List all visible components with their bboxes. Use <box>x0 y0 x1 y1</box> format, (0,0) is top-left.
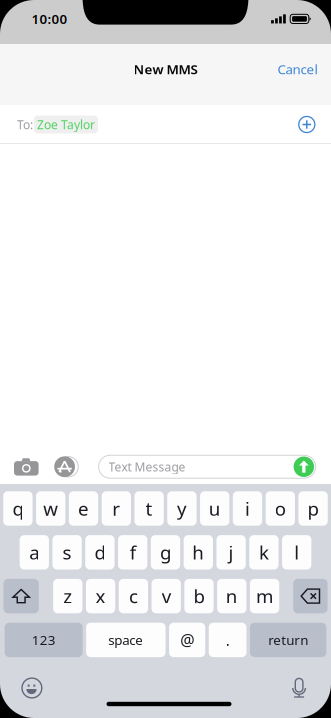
staticText: b <box>193 584 204 608</box>
button[interactable]: d <box>85 535 114 569</box>
button[interactable]: Send <box>294 456 316 477</box>
staticText: d <box>94 540 105 565</box>
staticText: 10:00 <box>31 10 67 28</box>
button[interactable]: k <box>249 535 278 569</box>
staticText: v <box>162 584 171 608</box>
button[interactable]: . <box>209 623 246 657</box>
staticText: To: <box>17 116 33 132</box>
button[interactable]: Dictate <box>293 678 331 699</box>
staticText: t <box>146 496 153 521</box>
button[interactable]: space <box>86 623 165 657</box>
button[interactable]: t <box>134 491 164 526</box>
staticText: . <box>226 629 230 650</box>
button[interactable]: h <box>184 535 213 569</box>
button[interactable]: u <box>200 491 229 526</box>
button[interactable]: return <box>250 623 326 657</box>
button[interactable]: w <box>36 491 65 526</box>
staticText: l <box>294 540 299 565</box>
button[interactable]: i <box>233 491 262 526</box>
button[interactable]: Emoji <box>0 678 42 699</box>
staticText: k <box>259 540 269 565</box>
staticText: f <box>130 540 136 565</box>
staticText: e <box>78 496 89 521</box>
staticText: Text Message <box>109 459 186 475</box>
staticText: m <box>256 584 273 608</box>
staticText: return <box>268 631 308 649</box>
staticText: r <box>112 496 120 521</box>
staticText: @ <box>180 629 194 650</box>
button[interactable]: o <box>266 491 295 526</box>
staticText: z <box>63 584 72 608</box>
button[interactable]: s <box>52 535 82 569</box>
staticText: h <box>192 540 204 565</box>
button[interactable]: g <box>151 535 180 569</box>
button[interactable]: q <box>3 491 32 526</box>
button[interactable]: z <box>53 579 82 613</box>
staticText: i <box>245 496 250 521</box>
button[interactable]: l <box>282 535 311 569</box>
button[interactable]: a <box>20 535 49 569</box>
staticText: o <box>275 496 286 521</box>
staticText: space <box>108 631 143 649</box>
button[interactable]: y <box>167 491 196 526</box>
button[interactable]: f <box>118 535 147 569</box>
button[interactable]: Cancel <box>264 53 331 85</box>
staticText: Cancel <box>277 60 317 78</box>
button[interactable]: e <box>69 491 98 526</box>
staticText: Zoe Taylor <box>37 116 95 132</box>
staticText: y <box>177 496 187 521</box>
staticText: s <box>63 540 72 565</box>
staticText: a <box>29 540 39 565</box>
staticText: c <box>129 584 138 608</box>
staticText: x <box>96 584 106 608</box>
button[interactable]: j <box>216 535 246 569</box>
button[interactable]: 123 <box>5 623 83 657</box>
button[interactable]: @ <box>169 623 205 657</box>
staticText: u <box>209 496 221 521</box>
staticText: w <box>43 496 58 521</box>
button[interactable]: n <box>217 579 246 613</box>
button[interactable]: Add contact <box>298 116 331 133</box>
staticText: q <box>12 496 23 521</box>
button[interactable]: x <box>86 579 115 613</box>
button[interactable]: Shift <box>3 579 39 613</box>
staticText: n <box>226 584 238 608</box>
button[interactable]: b <box>184 579 214 613</box>
staticText: New MMS <box>133 60 197 78</box>
staticText: g <box>160 540 171 565</box>
button[interactable]: m <box>250 579 279 613</box>
staticText: j <box>229 540 234 565</box>
button[interactable]: Delete <box>293 579 327 613</box>
button[interactable]: Apps <box>39 456 79 477</box>
staticText: p <box>308 496 319 521</box>
button[interactable]: c <box>119 579 148 613</box>
button[interactable]: Camera <box>0 458 39 476</box>
staticText: 123 <box>32 631 56 649</box>
button[interactable]: v <box>151 579 181 613</box>
button[interactable]: r <box>102 491 131 526</box>
button[interactable]: p <box>298 491 328 526</box>
